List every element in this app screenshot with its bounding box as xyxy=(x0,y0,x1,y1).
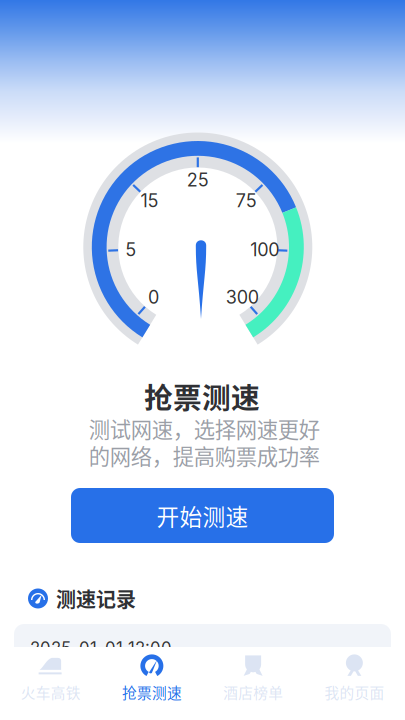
staticText: 2025-01-01 12:00 xyxy=(30,638,172,658)
staticText: 5 xyxy=(125,239,136,261)
staticText: 抢票测速 xyxy=(122,681,182,703)
staticText: 酒店榜单 xyxy=(223,681,283,703)
button[interactable]: 开始测速 xyxy=(71,488,334,543)
button[interactable]: 火车高铁 xyxy=(0,642,101,720)
staticText: 25 xyxy=(187,169,209,191)
staticText: 抢票测速 xyxy=(144,375,260,417)
button[interactable]: 抢票测速 xyxy=(101,642,202,720)
button[interactable]: 测速记录 xyxy=(28,584,136,613)
staticText: 开始测速 xyxy=(156,499,248,532)
staticText: 100 xyxy=(250,239,279,261)
button[interactable]: 酒店榜单 xyxy=(202,642,304,720)
staticText: 0 xyxy=(148,286,159,308)
staticText: 测速记录 xyxy=(56,584,136,613)
button[interactable]: 我的页面 xyxy=(304,642,405,720)
staticText: 测试网速，选择网速更好 的网络，提高购票成功率 xyxy=(88,413,319,471)
staticText: 我的页面 xyxy=(324,681,384,703)
staticText: 75 xyxy=(236,190,257,211)
staticText: 火车高铁 xyxy=(21,681,81,703)
staticText: 15 xyxy=(140,190,158,211)
staticText: 300 xyxy=(226,286,259,308)
